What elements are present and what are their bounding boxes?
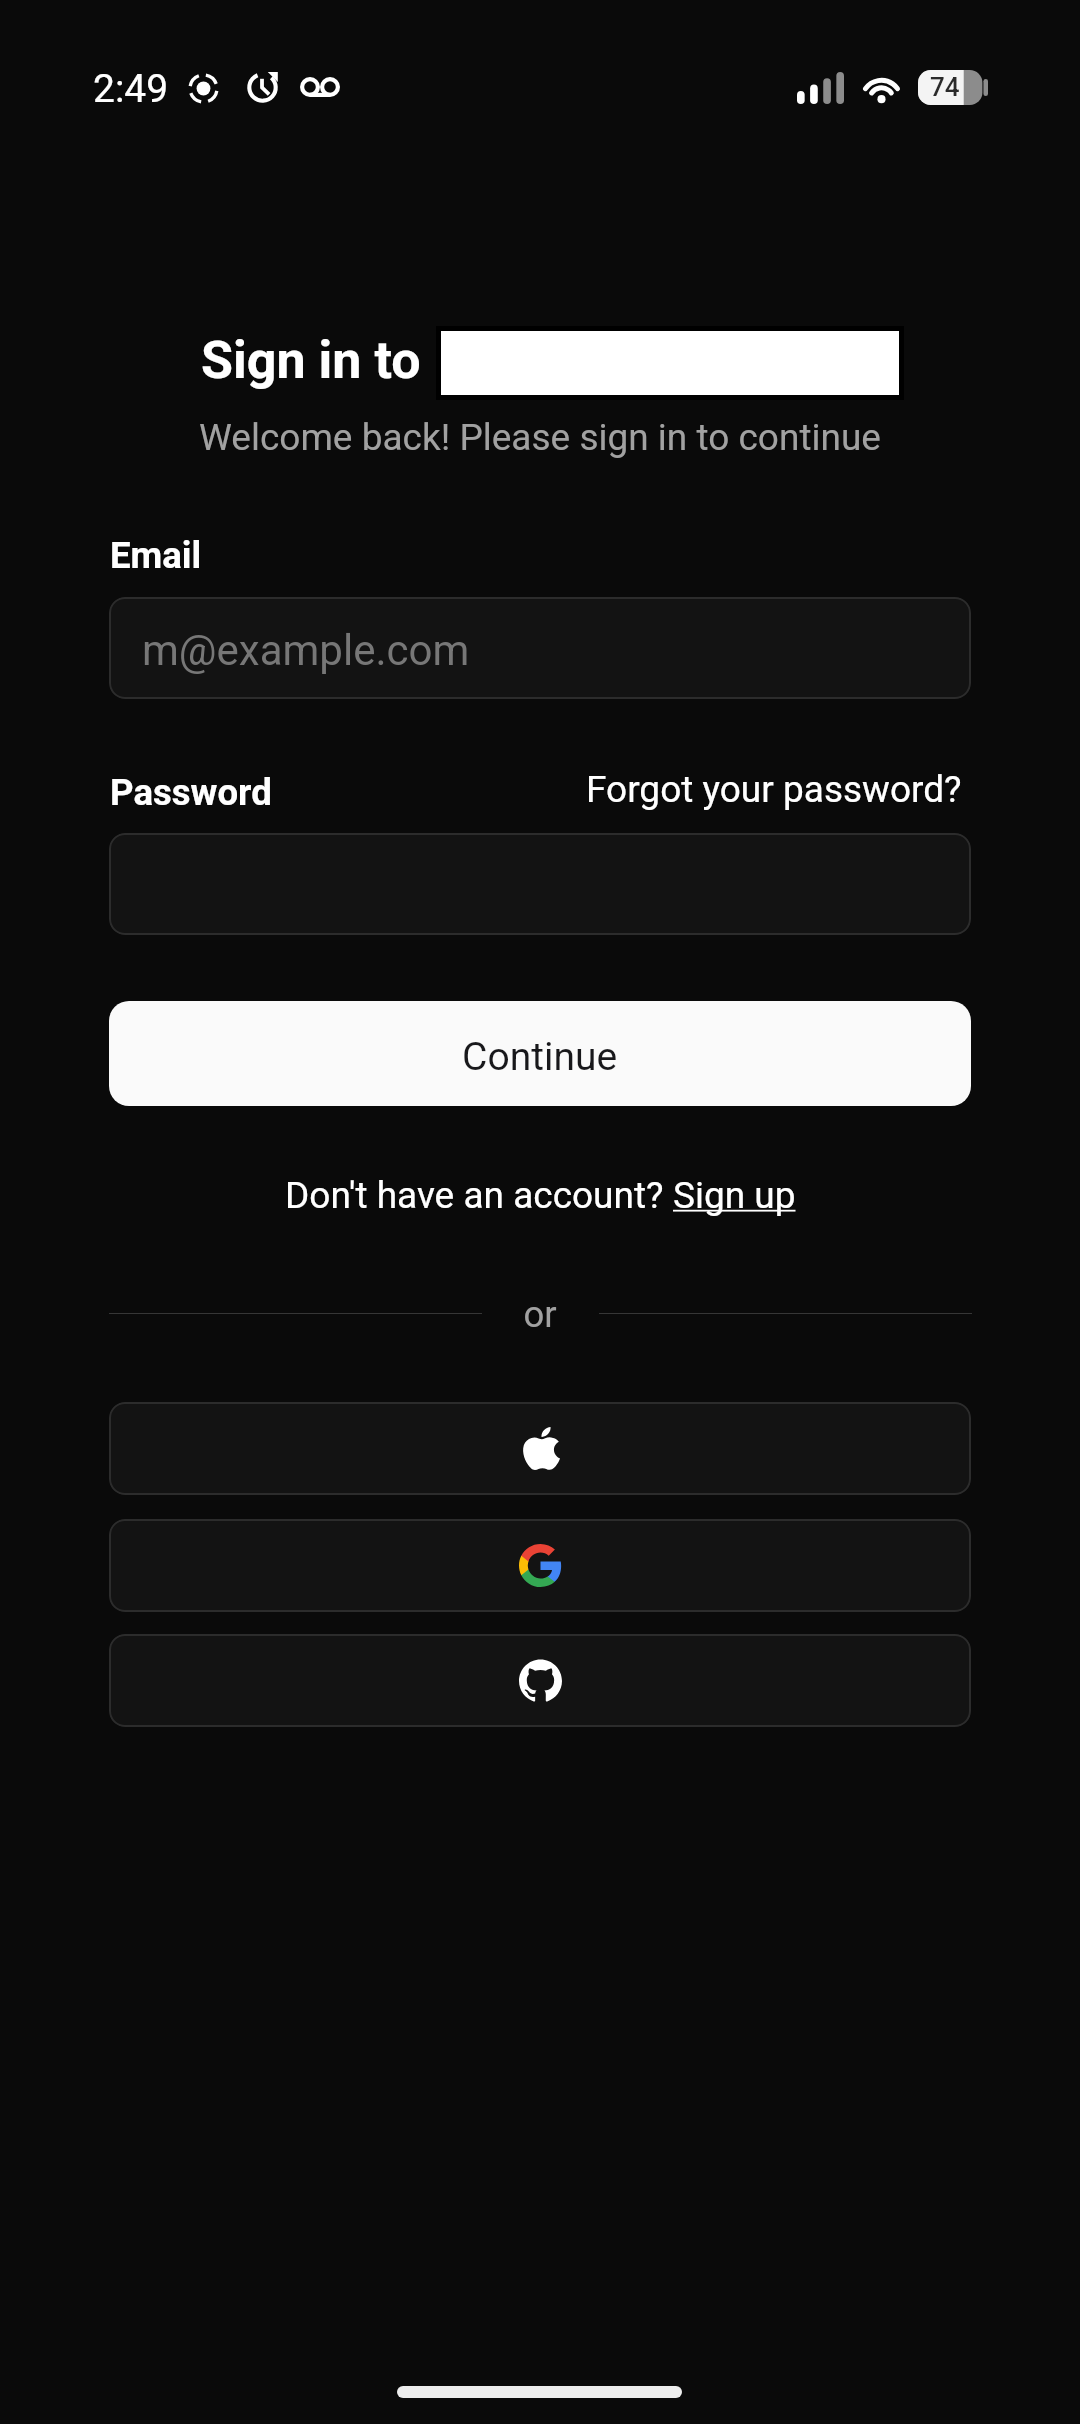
staticText: Continue xyxy=(462,1034,618,1080)
staticText: 2:49 xyxy=(93,66,169,112)
staticText: Forgot your password? xyxy=(586,768,962,811)
button[interactable]: Sign up xyxy=(673,1174,796,1217)
staticText: Sign in to xyxy=(201,330,421,391)
button[interactable] xyxy=(109,833,971,935)
staticText: 74 xyxy=(930,72,960,102)
staticText: m@example.com xyxy=(142,626,470,675)
button[interactable]: Continue xyxy=(109,1001,971,1106)
staticText: Email xyxy=(110,534,202,577)
staticText: Sign up xyxy=(673,1174,796,1217)
staticText: Password xyxy=(110,771,272,814)
button[interactable]: Sign in with GitHub xyxy=(109,1634,971,1727)
staticText: Don't have an account? xyxy=(285,1174,673,1217)
button[interactable]: Sign in with Google xyxy=(109,1519,971,1612)
staticText: or xyxy=(0,1293,1080,1336)
button[interactable]: Forgot your password? xyxy=(109,764,962,814)
button[interactable]: m@example.com xyxy=(109,597,971,699)
staticText: Welcome back! Please sign in to continue xyxy=(0,416,1080,459)
button[interactable]: Sign in with Apple xyxy=(109,1402,971,1495)
